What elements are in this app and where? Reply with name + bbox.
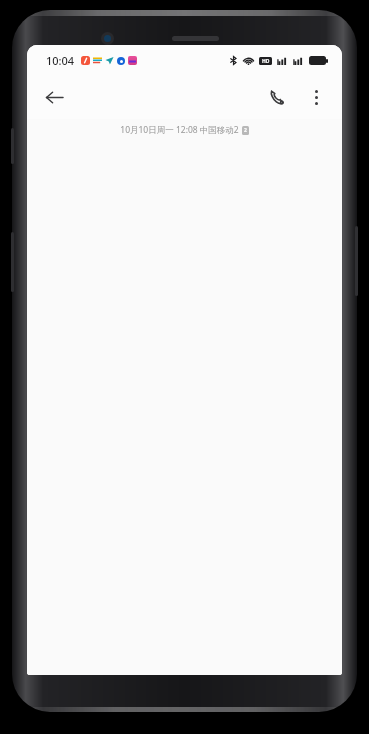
button[interactable]: Call	[256, 76, 298, 118]
button[interactable]: Back	[33, 76, 75, 118]
staticText: 10月10日周一 12:08 中国移动2	[120, 124, 239, 136]
staticText: HD	[262, 58, 270, 65]
staticText: 10:04	[46, 53, 75, 68]
staticText: 2	[244, 127, 247, 134]
button[interactable]: More options	[298, 79, 334, 115]
